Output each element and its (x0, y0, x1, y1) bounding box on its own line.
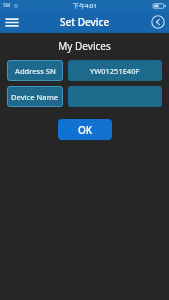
staticText: 下午4:01 (73, 2, 97, 10)
button[interactable]: Back (147, 11, 169, 33)
staticText: SM (3, 2, 11, 9)
staticText: OK (78, 123, 93, 137)
staticText: YW01251E40F (90, 66, 140, 76)
button[interactable]: Device Name (7, 86, 63, 107)
staticText: Device Name (11, 92, 59, 102)
button[interactable]: OK (58, 119, 112, 140)
staticText: My Devices (0, 39, 169, 53)
button[interactable] (68, 86, 162, 107)
button[interactable]: Menu (0, 11, 24, 33)
button[interactable]: Address SN (7, 60, 63, 81)
staticText: Set Device (60, 15, 110, 29)
button[interactable]: YW01251E40F (68, 60, 162, 81)
staticText: Address SN (15, 66, 56, 76)
